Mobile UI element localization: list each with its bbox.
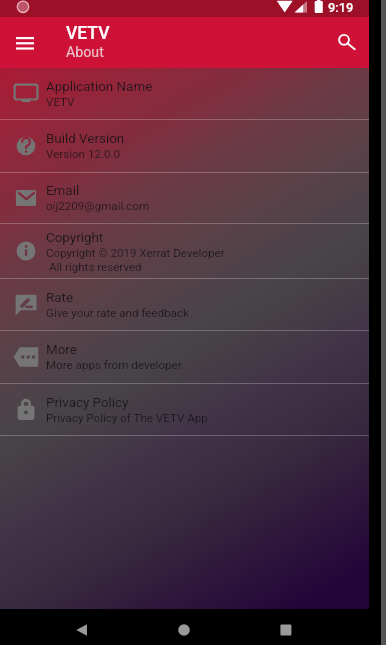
staticText: Application Name	[46, 79, 153, 95]
button[interactable]: More	[0, 331, 369, 383]
staticText: Version 12.0.0	[46, 147, 121, 161]
button[interactable]: Email	[0, 173, 369, 223]
button[interactable]: Privacy Policy	[0, 384, 369, 435]
button[interactable]: Rate	[0, 279, 369, 330]
staticText: Email	[46, 183, 80, 199]
staticText: Rate	[46, 290, 74, 306]
staticText: VETV	[66, 23, 110, 44]
staticText: More apps from developer	[46, 358, 182, 372]
button[interactable]: Copyright	[0, 224, 369, 278]
staticText: VETV	[46, 95, 75, 109]
staticText: 9:19	[328, 0, 354, 15]
staticText: Build Version	[46, 131, 125, 147]
staticText: oij2209@gmail.com	[46, 199, 150, 213]
button[interactable]: Build Version	[0, 120, 369, 172]
staticText: Privacy Policy	[46, 395, 129, 411]
button[interactable]: Search	[328, 24, 366, 62]
staticText: Copyright © 2019 Xerrat Developer All ri…	[46, 246, 225, 273]
staticText: Give your rate and feedback	[46, 306, 189, 320]
staticText: Copyright	[46, 230, 104, 246]
button[interactable]: Application Name	[0, 68, 369, 119]
staticText: More	[46, 342, 77, 358]
staticText: About	[66, 44, 104, 61]
staticText: Privacy Policy of The VETV App	[46, 411, 208, 425]
button[interactable]: Open navigation menu	[7, 25, 43, 61]
